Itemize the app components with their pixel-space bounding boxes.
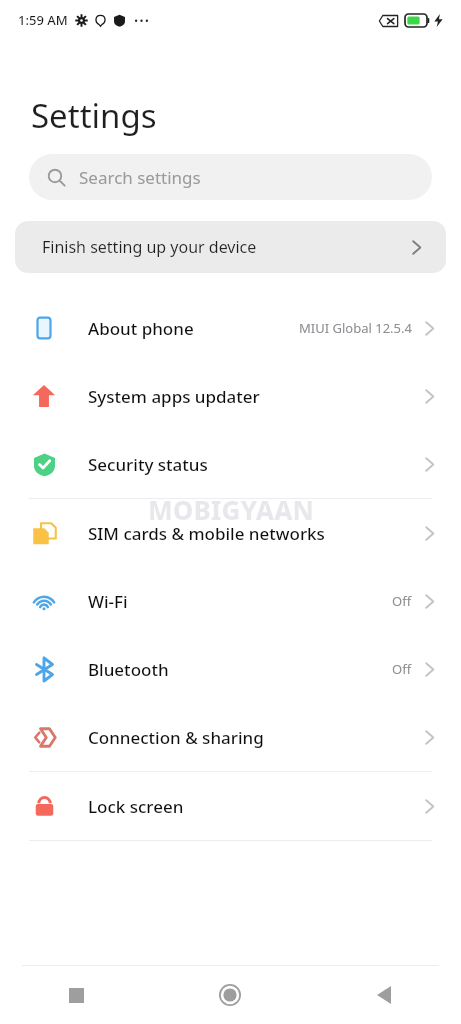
staticText: Off xyxy=(392,660,412,678)
button[interactable]: Search settings xyxy=(29,154,432,200)
button[interactable]: About phone xyxy=(0,294,461,362)
staticText: Off xyxy=(392,592,412,610)
button[interactable]: SIM cards & mobile networks xyxy=(0,499,461,567)
button[interactable]: Back xyxy=(307,966,461,1024)
button[interactable]: System apps updater xyxy=(0,362,461,430)
staticText: MIUI Global 12.5.4 xyxy=(299,319,412,337)
button[interactable]: Connection & sharing xyxy=(0,703,461,771)
button[interactable]: Recents xyxy=(0,966,153,1024)
staticText: Security status xyxy=(88,453,208,476)
staticText: About phone xyxy=(88,317,194,340)
button[interactable]: Wi-Fi xyxy=(0,567,461,635)
button[interactable]: Home xyxy=(153,966,307,1024)
staticText: Search settings xyxy=(79,166,201,189)
button[interactable]: Security status xyxy=(0,430,461,498)
staticText: Settings xyxy=(31,93,157,138)
button[interactable]: Bluetooth xyxy=(0,635,461,703)
button[interactable]: Lock screen xyxy=(0,772,461,840)
staticText: Finish setting up your device xyxy=(42,236,257,258)
button[interactable]: Finish setting up your device xyxy=(15,221,446,273)
staticText: Connection & sharing xyxy=(88,726,264,749)
staticText: SIM cards & mobile networks xyxy=(88,522,325,545)
staticText: Lock screen xyxy=(88,795,184,818)
staticText: 1:59 AM xyxy=(18,11,68,29)
staticText: System apps updater xyxy=(88,385,260,408)
staticText: Bluetooth xyxy=(88,658,169,681)
staticText: Wi-Fi xyxy=(88,590,128,613)
staticText: MOBIGYAAN xyxy=(148,492,314,527)
